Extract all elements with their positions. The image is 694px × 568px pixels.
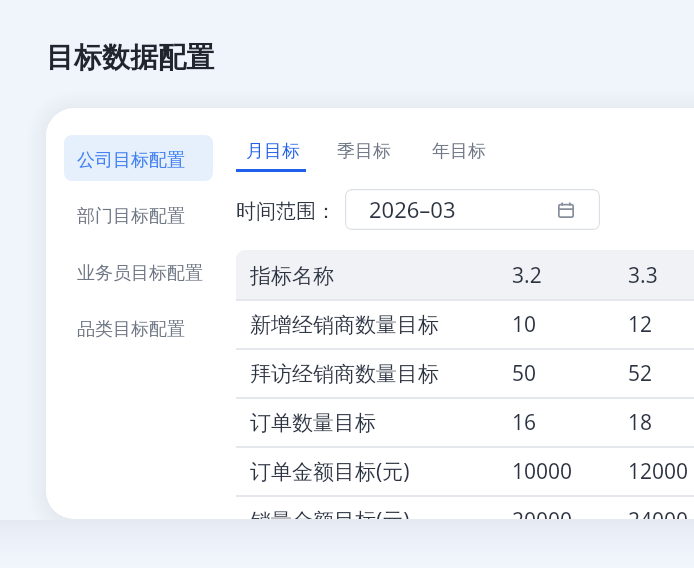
staticText: 3.2	[512, 261, 542, 290]
button[interactable]: 业务员目标配置	[64, 248, 213, 294]
staticText: 20000	[512, 506, 573, 519]
button[interactable]: 订单数量目标	[236, 397, 694, 446]
staticText: 16	[512, 408, 537, 437]
staticText: 业务员目标配置	[77, 262, 203, 285]
button[interactable]: 年目标	[420, 140, 498, 163]
staticText: 品类目标配置	[77, 318, 185, 341]
button[interactable]: 2026–03	[345, 189, 600, 230]
button[interactable]: 公司目标配置	[64, 135, 213, 181]
staticText: 50	[512, 359, 537, 388]
staticText: 新增经销商数量目标	[250, 312, 439, 338]
staticText: 10000	[512, 457, 573, 486]
staticText: 24000	[628, 506, 689, 519]
staticText: 2026–03	[369, 194, 456, 224]
staticText: 季目标	[337, 140, 391, 163]
staticText: 年目标	[432, 140, 486, 163]
button[interactable]: 季目标	[325, 140, 403, 163]
staticText: 10	[512, 310, 537, 339]
staticText: 销量金额目标(元)	[250, 506, 410, 519]
staticText: 时间范围：	[236, 199, 336, 224]
staticText: 52	[628, 359, 653, 388]
button[interactable]: 新增经销商数量目标	[236, 299, 694, 348]
staticText: 拜访经销商数量目标	[250, 361, 439, 387]
staticText: 目标数据配置	[46, 40, 214, 75]
staticText: 3.3	[628, 261, 658, 290]
staticText: 订单金额目标(元)	[250, 457, 410, 486]
staticText: 订单数量目标	[250, 410, 376, 436]
staticText: 12000	[628, 457, 689, 486]
button[interactable]: 品类目标配置	[64, 304, 213, 350]
button[interactable]: 销量金额目标(元)	[236, 495, 694, 519]
staticText: 月目标	[246, 140, 300, 163]
button[interactable]: 月目标	[234, 140, 312, 172]
other: Select month	[558, 202, 574, 218]
button[interactable]: 部门目标配置	[64, 191, 213, 237]
staticText: 18	[628, 408, 653, 437]
staticText: 指标名称	[250, 263, 334, 289]
button[interactable]: 拜访经销商数量目标	[236, 348, 694, 397]
button[interactable]: 订单金额目标(元)	[236, 446, 694, 495]
staticText: 部门目标配置	[77, 205, 185, 228]
staticText: 公司目标配置	[77, 149, 185, 172]
staticText: 12	[628, 310, 653, 339]
